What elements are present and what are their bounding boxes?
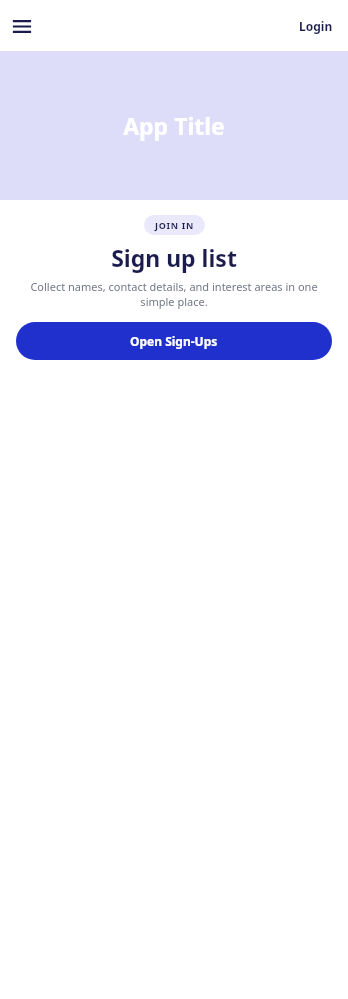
staticText: JOIN IN (155, 219, 194, 231)
staticText: Collect names, contact details, and inte… (17, 279, 331, 309)
staticText: Sign up list (111, 242, 237, 273)
button[interactable]: Login (292, 11, 340, 41)
button[interactable]: Open Sign-Ups (16, 322, 332, 360)
button[interactable]: JOIN IN (144, 215, 205, 235)
staticText: App Title (123, 110, 225, 141)
staticText: Open Sign-Ups (130, 333, 218, 349)
staticText: Login (299, 18, 333, 34)
button[interactable]: Open navigation menu (6, 10, 38, 42)
